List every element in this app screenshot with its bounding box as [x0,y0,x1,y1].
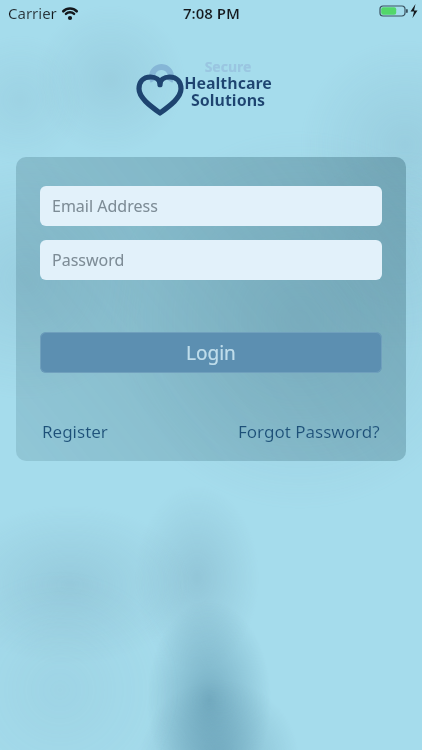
staticText: Secure Healthcare Solutions [184,57,272,111]
button[interactable]: Register [42,420,108,443]
staticText: Login [186,340,236,366]
button[interactable]: Login [40,332,382,373]
staticText: Forgot Password? [238,420,380,443]
button[interactable]: Password [40,240,382,280]
button[interactable]: Email Address [40,186,382,226]
staticText: 7:08 PM [183,3,240,23]
button[interactable]: Forgot Password? [238,420,380,443]
staticText: Register [42,420,108,443]
staticText: Email Address [52,195,158,217]
staticText: Password [52,249,125,271]
staticText: Carrier [8,3,57,23]
